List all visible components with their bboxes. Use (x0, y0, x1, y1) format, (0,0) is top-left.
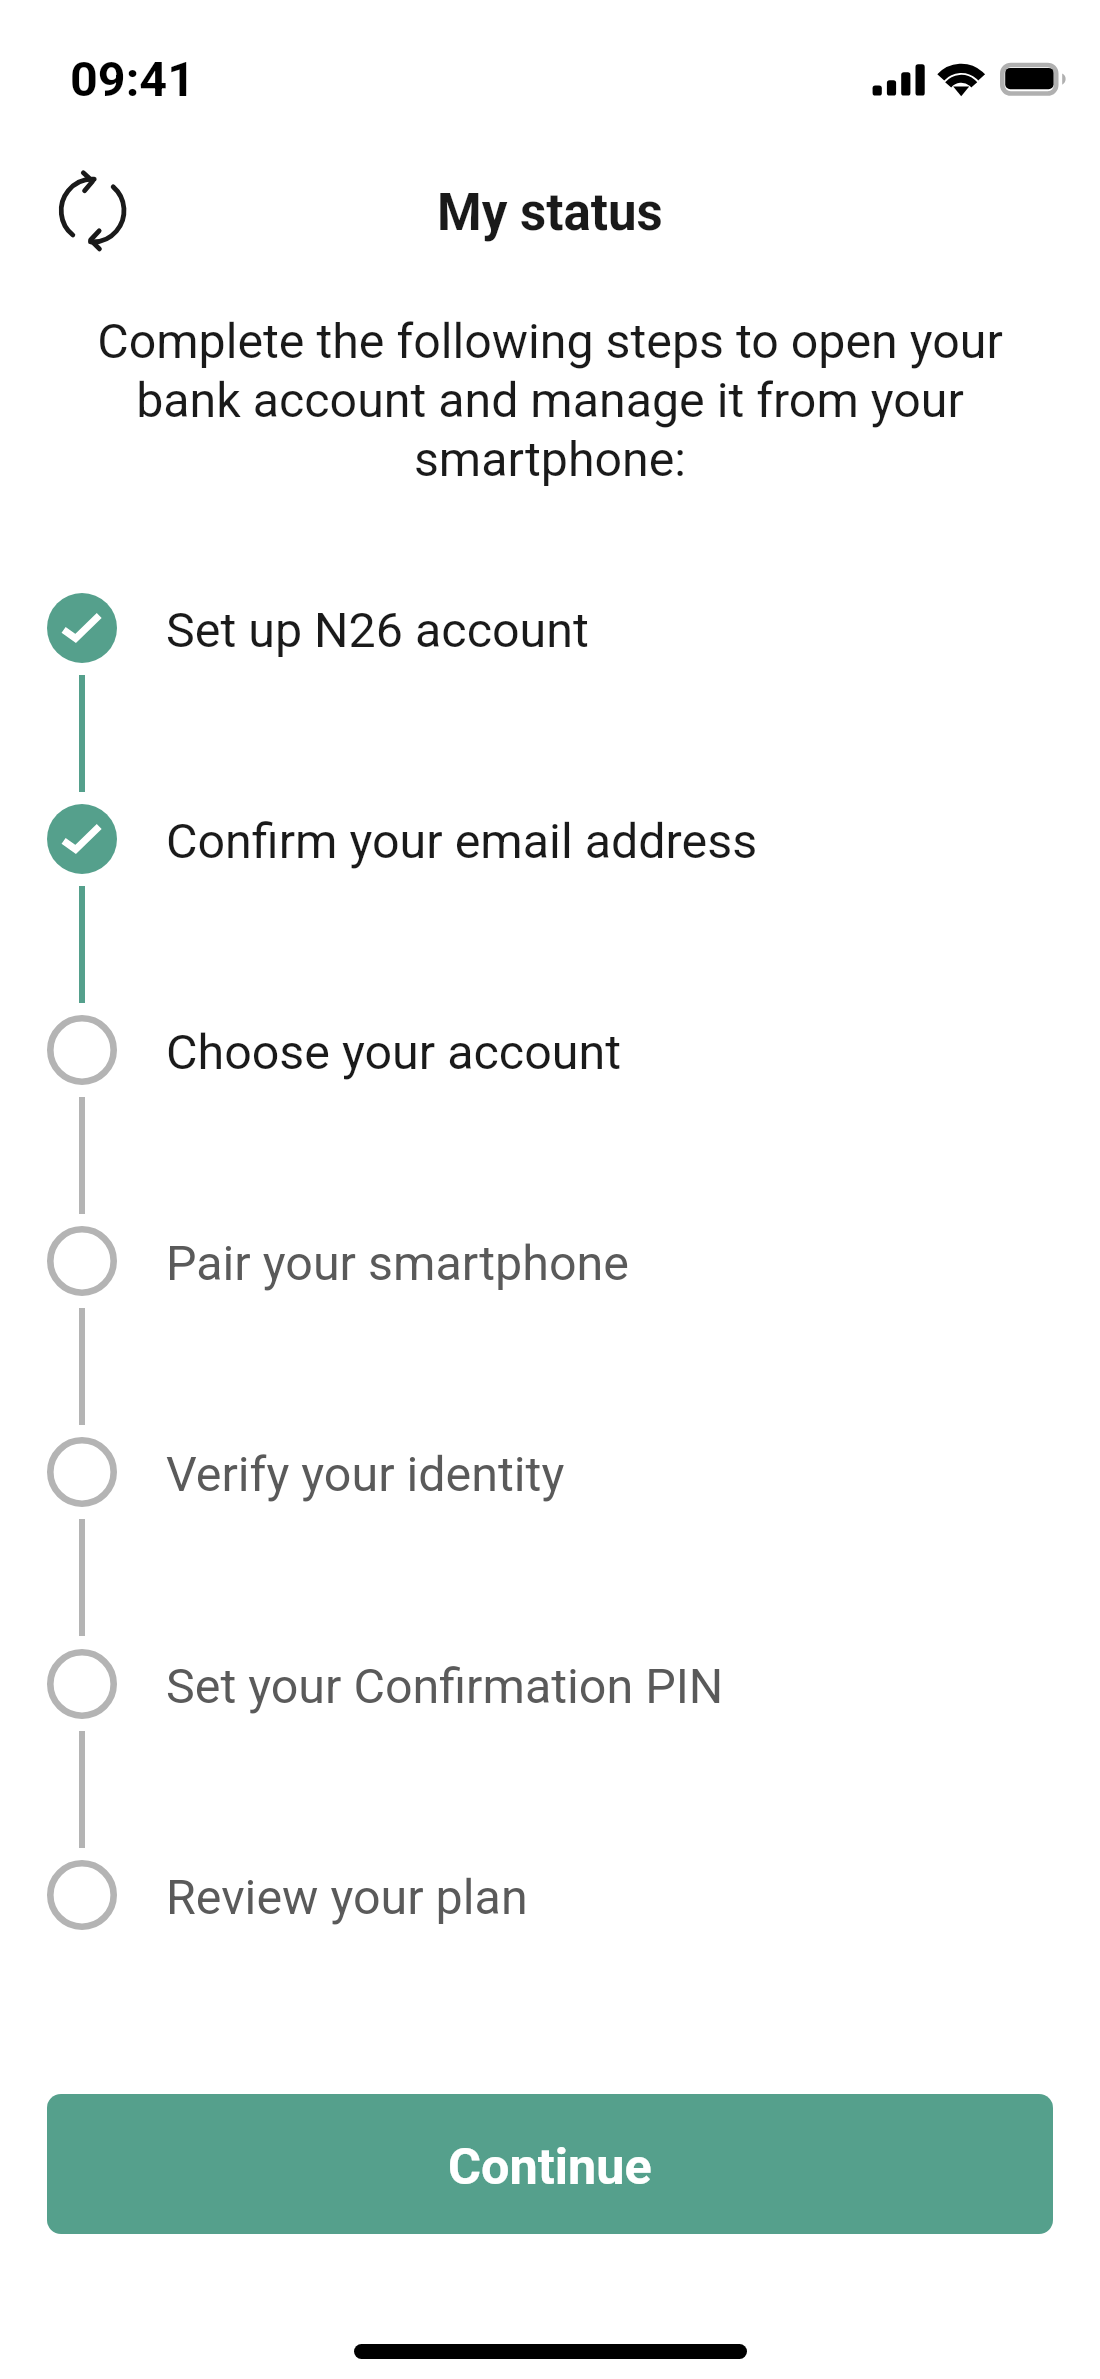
button[interactable]: Continue (47, 2094, 1053, 2234)
button[interactable]: Refresh status (44, 161, 142, 259)
staticText: My status (437, 183, 663, 243)
button[interactable]: Set up N26 account (30, 576, 1070, 680)
button[interactable]: Verify your identity (30, 1420, 1070, 1524)
staticText: Review your plan (166, 1869, 528, 1926)
staticText: Confirm your email address (166, 813, 758, 870)
button[interactable]: Pair your smartphone (30, 1209, 1070, 1313)
button[interactable]: Choose your account (30, 998, 1070, 1102)
staticText: Set your Confirmation PIN (166, 1658, 724, 1715)
button[interactable]: Confirm your email address (30, 787, 1070, 891)
staticText: Complete the following steps to open you… (88, 313, 1012, 488)
staticText: Verify your identity (166, 1446, 565, 1503)
staticText: Choose your account (166, 1024, 622, 1081)
staticText: Pair your smartphone (166, 1235, 629, 1292)
staticText: 09:41 (70, 51, 195, 108)
button[interactable]: Set your Confirmation PIN (30, 1632, 1070, 1736)
staticText: Set up N26 account (166, 602, 589, 659)
staticText: Continue (448, 2137, 652, 2196)
button[interactable]: Review your plan (30, 1843, 1070, 1947)
